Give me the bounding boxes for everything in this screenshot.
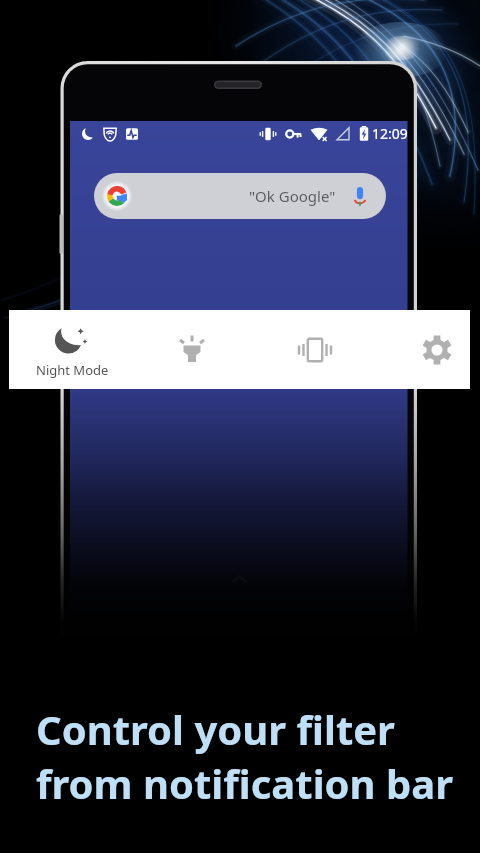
staticText: Control your filter (36, 702, 395, 756)
button[interactable]: Night Mode (17, 310, 127, 389)
staticText: from notification bar (36, 756, 454, 810)
button[interactable]: Flashlight (149, 310, 235, 389)
staticText: 12:09 (372, 124, 408, 143)
button[interactable]: Google search (94, 173, 386, 219)
button[interactable]: Vibrate (272, 310, 358, 389)
staticText: Night Mode (36, 361, 109, 379)
staticText: "Ok Google" (249, 186, 336, 206)
button[interactable]: Settings (394, 310, 480, 389)
